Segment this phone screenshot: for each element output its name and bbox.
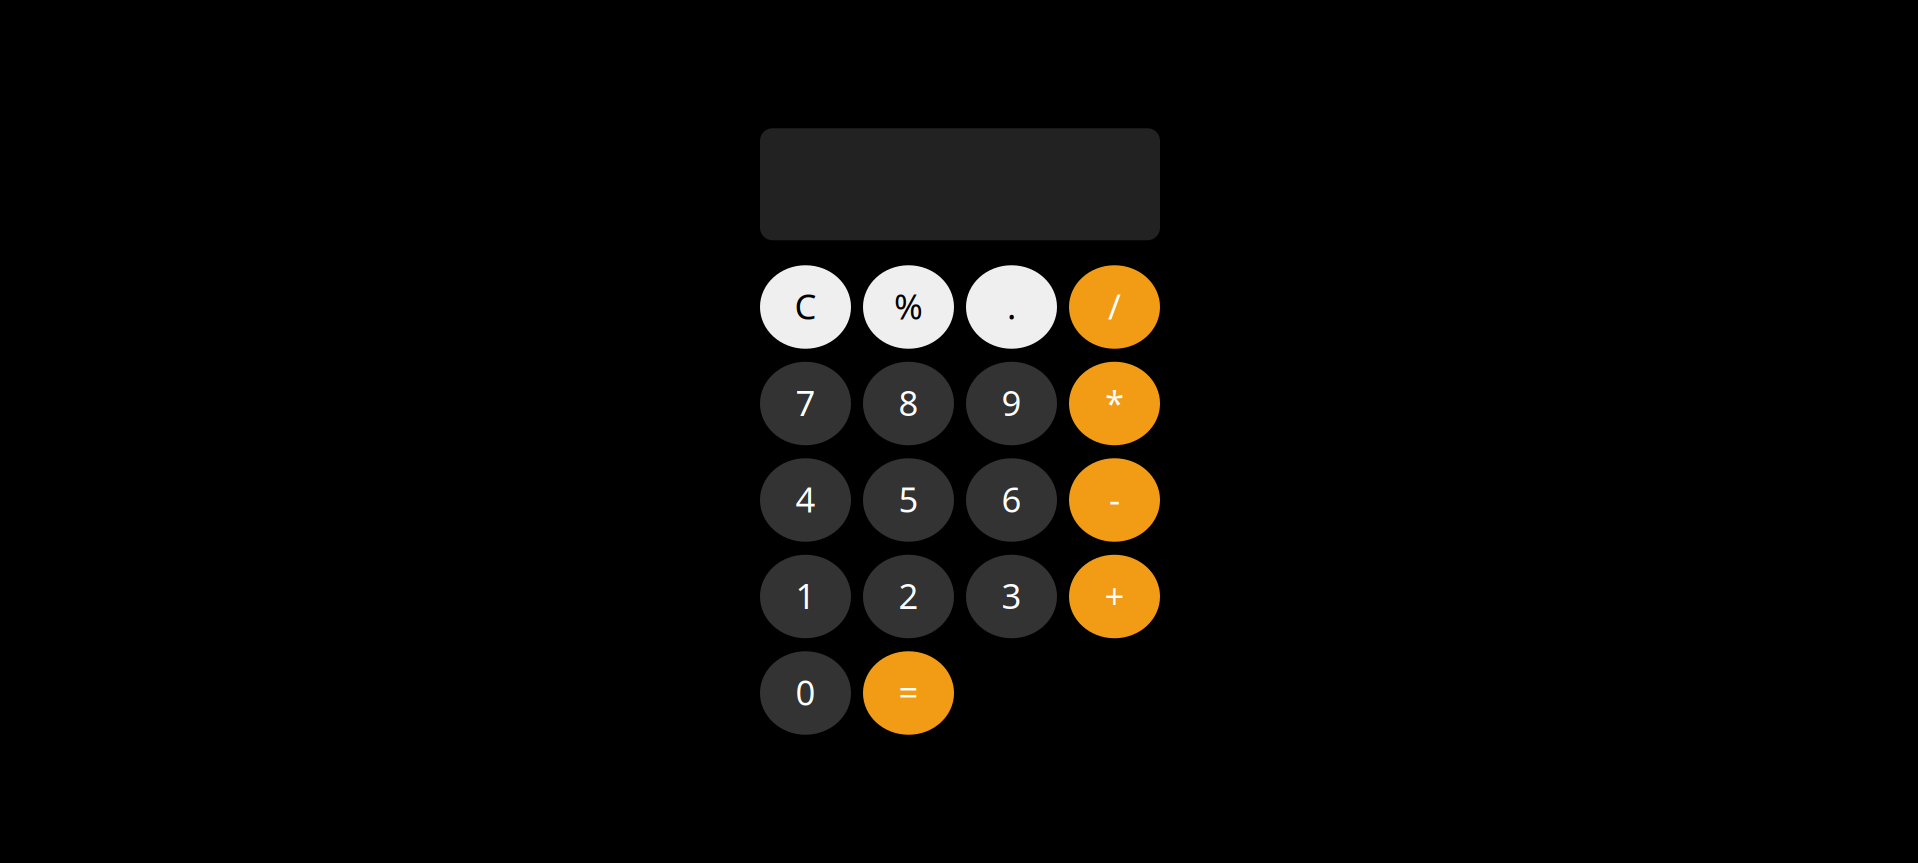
staticText: / xyxy=(1108,283,1121,329)
button[interactable]: 9 xyxy=(966,362,1057,445)
button[interactable]: C xyxy=(760,265,851,349)
staticText: 1 xyxy=(795,572,815,618)
staticText: 6 xyxy=(1001,476,1021,522)
button[interactable]: = xyxy=(863,651,954,735)
staticText: 5 xyxy=(898,476,918,522)
button[interactable]: 3 xyxy=(966,555,1057,638)
button[interactable]: . xyxy=(966,265,1057,349)
button[interactable]: 7 xyxy=(760,362,851,445)
staticText: 7 xyxy=(795,379,815,425)
button[interactable]: / xyxy=(1069,265,1160,349)
button[interactable]: % xyxy=(863,265,954,349)
button[interactable]: 4 xyxy=(760,458,851,542)
button[interactable]: 5 xyxy=(863,458,954,542)
button[interactable]: 8 xyxy=(863,362,954,445)
staticText: 8 xyxy=(898,379,918,425)
staticText: . xyxy=(1007,283,1016,329)
staticText: 2 xyxy=(898,572,918,618)
staticText: C xyxy=(794,283,816,329)
staticText: * xyxy=(1105,379,1124,425)
staticText: 4 xyxy=(795,476,815,522)
button[interactable]: 2 xyxy=(863,555,954,638)
button[interactable]: - xyxy=(1069,458,1160,542)
staticText: = xyxy=(898,669,918,715)
button[interactable]: 1 xyxy=(760,555,851,638)
staticText: % xyxy=(894,283,923,329)
staticText: - xyxy=(1109,476,1120,522)
button[interactable]: * xyxy=(1069,362,1160,445)
button[interactable]: 0 xyxy=(760,651,851,735)
staticText: 3 xyxy=(1001,572,1021,618)
staticText: 0 xyxy=(795,669,815,715)
button[interactable]: 6 xyxy=(966,458,1057,542)
button[interactable]: + xyxy=(1069,555,1160,638)
staticText: + xyxy=(1104,572,1124,618)
staticText: 9 xyxy=(1001,379,1021,425)
